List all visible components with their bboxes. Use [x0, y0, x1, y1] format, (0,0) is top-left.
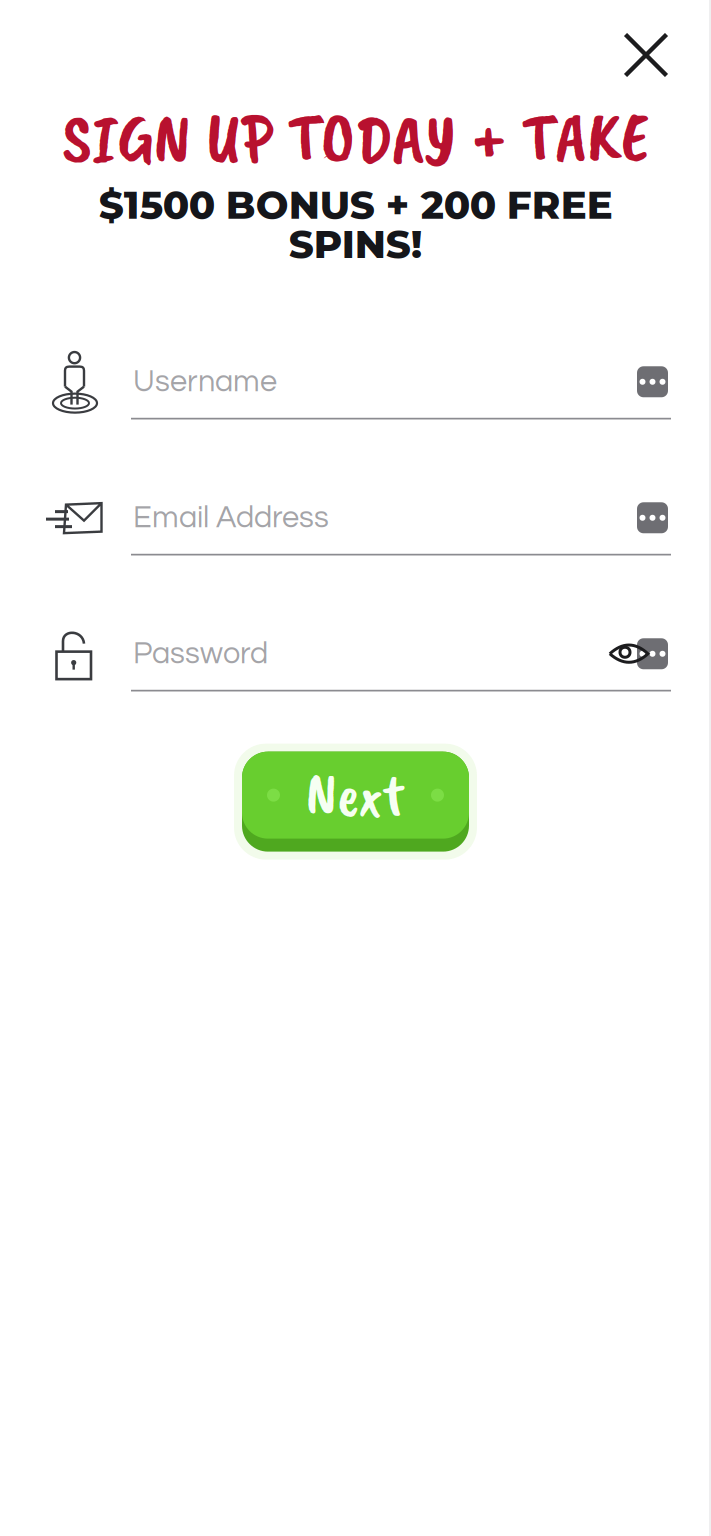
- staticText: Username: [133, 366, 277, 398]
- button[interactable]: Email Address: [0, 482, 711, 556]
- button[interactable]: Close: [613, 22, 679, 88]
- staticText: Password: [133, 638, 268, 670]
- button[interactable]: Password: [0, 618, 711, 692]
- staticText: Email Address: [133, 502, 329, 534]
- button[interactable]: Next: [236, 757, 475, 863]
- staticText: Next: [306, 758, 405, 832]
- staticText: SIGN UP TODAY + TAKE: [62, 94, 649, 181]
- button[interactable]: Username: [0, 346, 711, 420]
- staticText: $1500 BONUS + 200 FREE SPINS!: [98, 181, 612, 268]
